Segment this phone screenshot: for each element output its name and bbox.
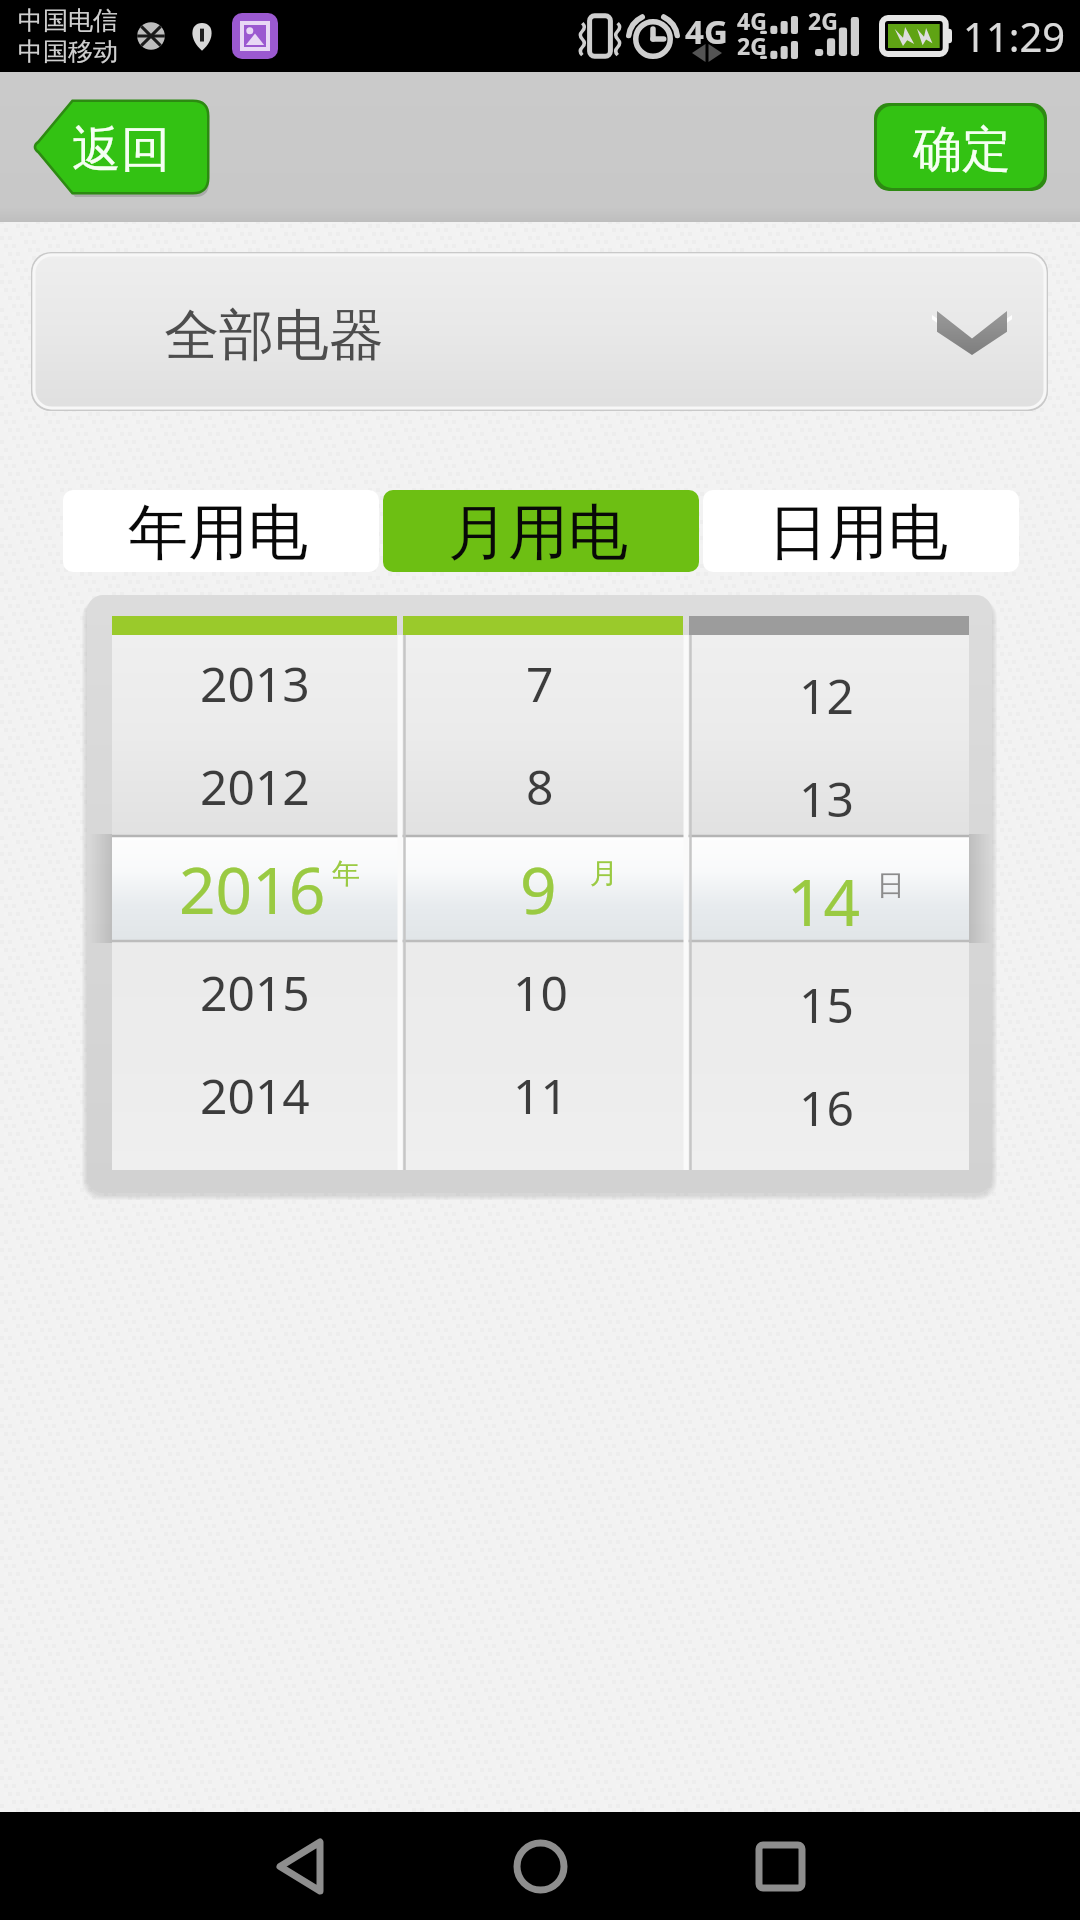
staticText: 11:29 — [963, 9, 1066, 63]
staticText: 14 — [787, 858, 861, 945]
staticText: 日 — [877, 868, 905, 903]
button[interactable]: 9 — [397, 838, 683, 941]
staticText: 15 — [799, 972, 854, 1037]
button[interactable]: 2013 — [112, 632, 397, 735]
staticText: 4G — [737, 5, 767, 36]
staticText: 全部电器 — [164, 301, 384, 370]
staticText: 月 — [590, 856, 618, 891]
button[interactable]: 2012 — [112, 735, 397, 838]
button[interactable]: 15 — [683, 953, 969, 1056]
staticText: 返回 — [72, 119, 170, 181]
staticText: 2G — [808, 5, 838, 36]
staticText: 9 — [520, 846, 557, 933]
staticText: 13 — [799, 766, 854, 831]
button[interactable]: 月用电 — [383, 490, 699, 572]
button[interactable]: Home — [513, 1839, 568, 1894]
staticText: 4G — [685, 9, 728, 54]
button[interactable]: Recents — [755, 1841, 806, 1892]
staticText: 8 — [526, 754, 554, 819]
button[interactable]: 16 — [683, 1056, 969, 1159]
button[interactable]: 确定 — [874, 103, 1047, 191]
button[interactable]: 年用电 — [63, 490, 379, 572]
button[interactable]: 2014 — [112, 1044, 397, 1147]
button[interactable]: Back — [277, 1839, 323, 1894]
staticText: 11 — [513, 1063, 568, 1128]
staticText: 12 — [799, 663, 854, 728]
staticText: 2012 — [200, 754, 310, 819]
button[interactable]: 8 — [397, 735, 683, 838]
staticText: 年 — [332, 856, 360, 891]
staticText: 日用电 — [768, 495, 948, 571]
staticText: 中国电信 — [18, 5, 118, 36]
staticText: 2013 — [200, 651, 310, 716]
button[interactable]: 13 — [683, 747, 969, 850]
staticText: 中国移动 — [18, 36, 118, 67]
button[interactable]: 7 — [397, 632, 683, 735]
staticText: 2G — [737, 30, 767, 61]
button[interactable]: 12 — [683, 644, 969, 747]
button[interactable]: 2015 — [112, 941, 397, 1044]
button[interactable]: 日用电 — [703, 490, 1019, 572]
staticText: 确定 — [913, 119, 1011, 181]
staticText: 2014 — [200, 1063, 310, 1128]
staticText: 7 — [526, 651, 554, 716]
staticText: 月用电 — [448, 495, 628, 571]
button[interactable]: 14 — [683, 850, 969, 953]
button[interactable]: 11 — [397, 1044, 683, 1147]
staticText: 10 — [513, 960, 568, 1025]
staticText: 2015 — [200, 960, 310, 1025]
staticText: 16 — [799, 1075, 854, 1140]
button[interactable]: 全部电器, select appliance — [31, 252, 1048, 411]
staticText: 年用电 — [128, 495, 308, 571]
button[interactable]: 10 — [397, 941, 683, 1044]
staticText: 2016 — [179, 846, 326, 933]
button[interactable]: 返回 — [33, 102, 207, 192]
button[interactable]: 2016 — [112, 838, 397, 941]
